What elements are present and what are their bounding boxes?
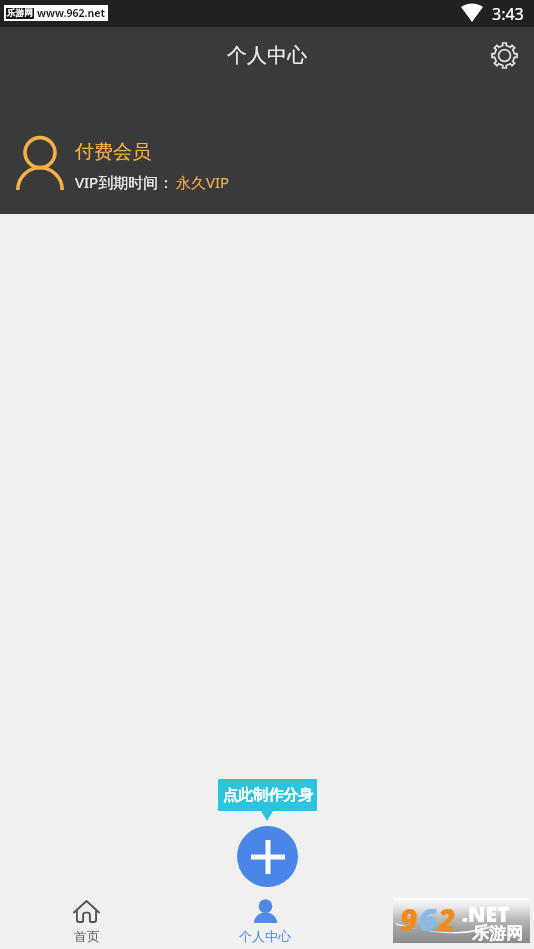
- staticText: 2: [438, 899, 457, 940]
- staticText: 乐游网: [7, 8, 33, 19]
- staticText: 9: [400, 899, 419, 940]
- staticText: 6: [419, 899, 438, 940]
- staticText: 3:43: [492, 3, 524, 25]
- staticText: 点此制作分身: [223, 786, 313, 805]
- button[interactable]: 个人中心: [223, 894, 307, 949]
- staticText: 个人中心: [239, 928, 291, 944]
- staticText: 乐游网: [472, 923, 523, 944]
- button[interactable]: Add: [237, 826, 298, 887]
- staticText: 首页: [74, 928, 100, 944]
- staticText: VIP到期时间：: [75, 172, 174, 192]
- staticText: 付费会员: [75, 140, 151, 164]
- button[interactable]: 点此制作分身: [218, 779, 317, 811]
- staticText: 个人中心: [227, 43, 307, 68]
- staticText: 永久VIP: [176, 172, 230, 192]
- button[interactable]: 首页: [44, 894, 128, 949]
- button[interactable]: 付费会员: [0, 83, 534, 214]
- staticText: www.962.net: [37, 6, 106, 20]
- button[interactable]: Settings: [482, 33, 526, 77]
- staticText: .NET: [462, 900, 510, 929]
